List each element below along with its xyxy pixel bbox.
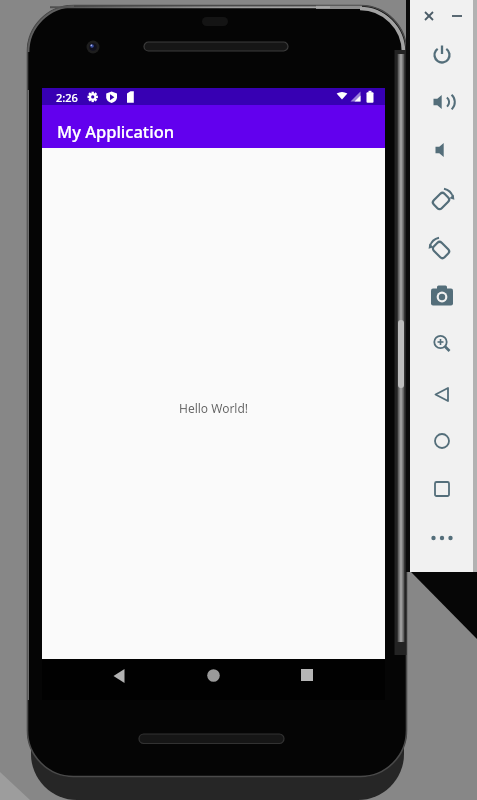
button[interactable] bbox=[426, 473, 458, 505]
button[interactable] bbox=[426, 328, 458, 360]
button[interactable] bbox=[426, 425, 458, 457]
button[interactable] bbox=[426, 183, 458, 215]
staticText: 2:26 bbox=[56, 90, 78, 105]
button[interactable] bbox=[103, 660, 135, 692]
button[interactable] bbox=[426, 522, 458, 554]
staticText: Hello World! bbox=[179, 400, 249, 416]
button[interactable] bbox=[426, 38, 458, 70]
button[interactable] bbox=[426, 134, 458, 166]
button[interactable] bbox=[441, 0, 473, 32]
staticText: My Application bbox=[57, 120, 175, 142]
button[interactable] bbox=[291, 659, 323, 691]
button[interactable] bbox=[426, 378, 458, 410]
button[interactable] bbox=[413, 0, 445, 32]
button[interactable] bbox=[426, 280, 458, 312]
button[interactable] bbox=[197, 659, 229, 691]
button[interactable] bbox=[426, 232, 458, 264]
button[interactable] bbox=[426, 86, 458, 118]
